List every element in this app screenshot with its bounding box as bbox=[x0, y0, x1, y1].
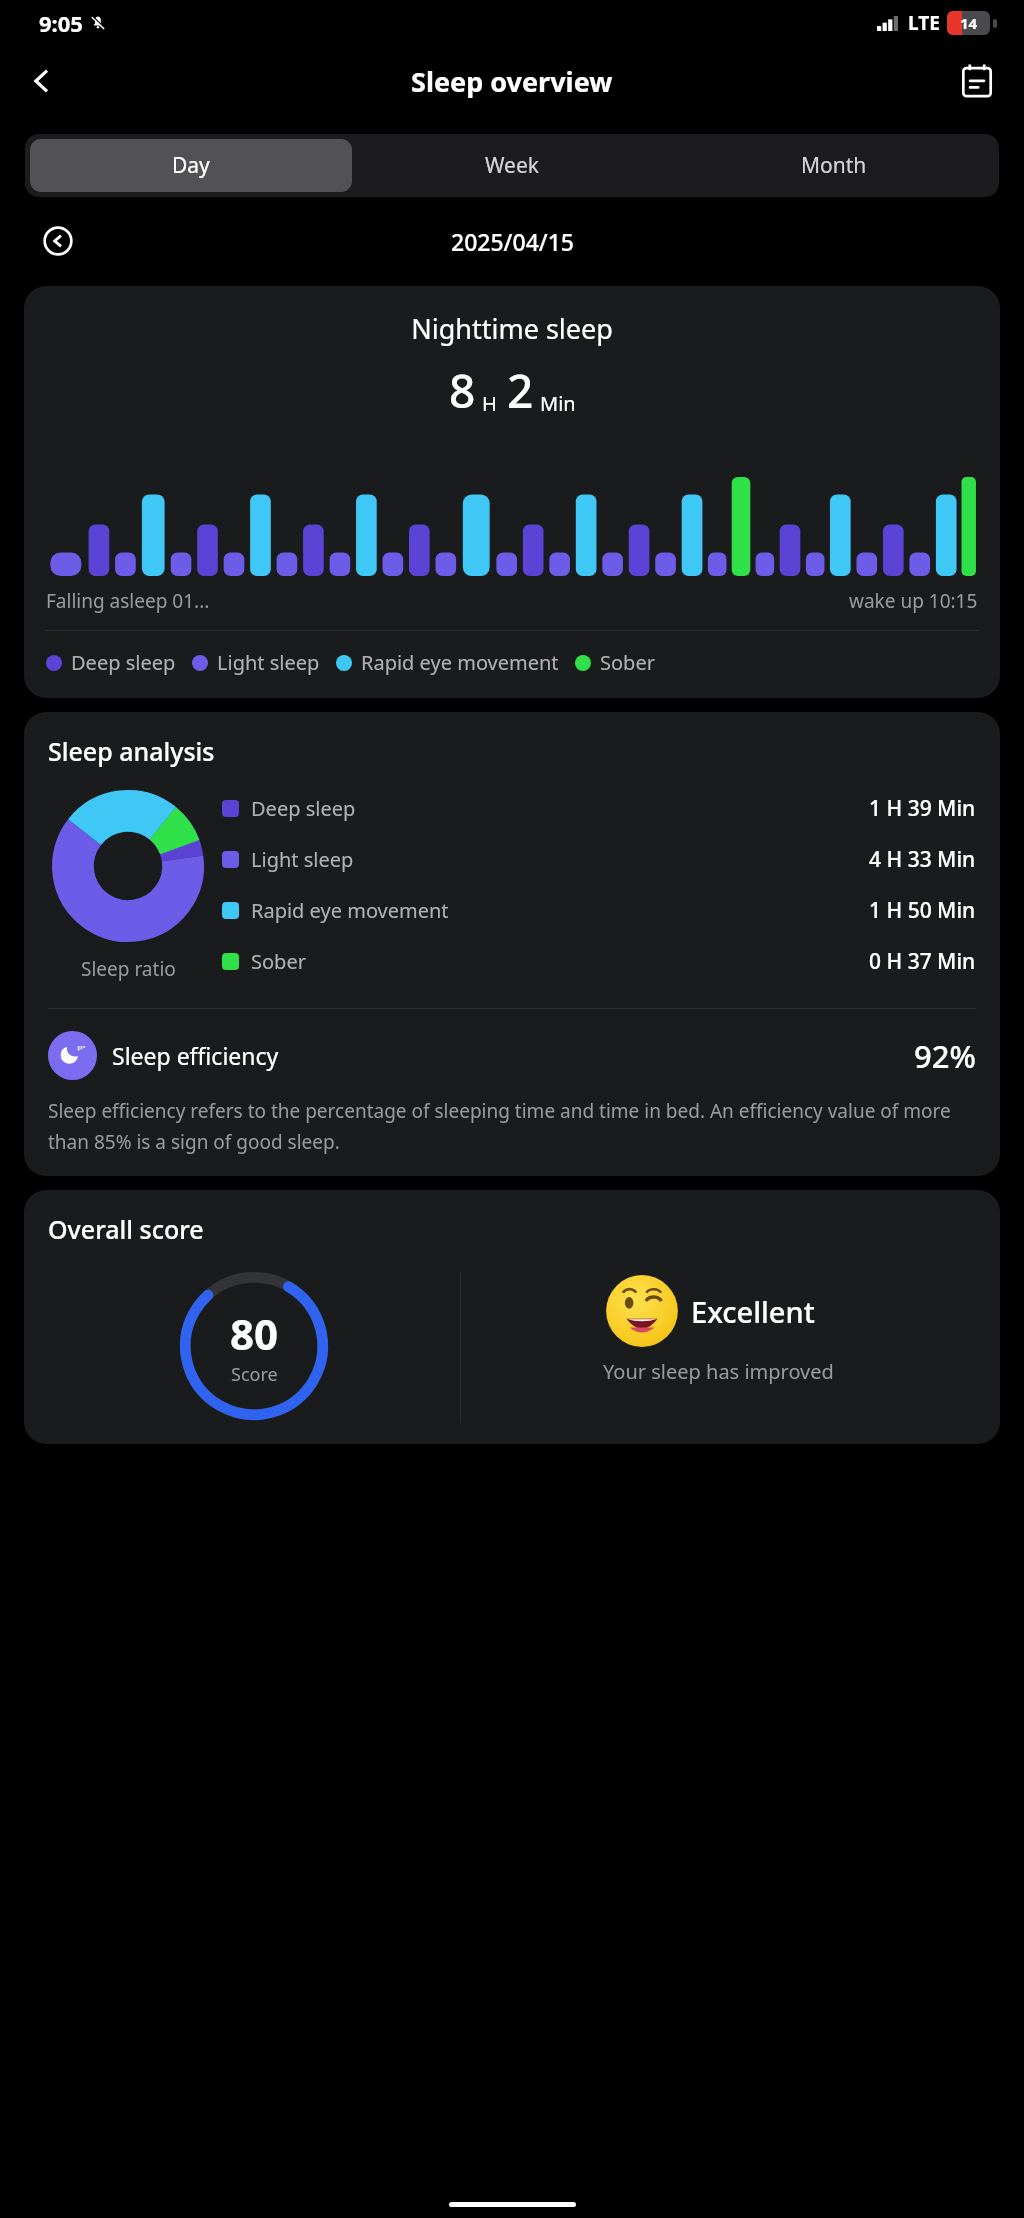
staticText: 4 H 33 Min bbox=[869, 845, 976, 874]
button[interactable]: Month bbox=[673, 139, 994, 192]
staticText: Light sleep bbox=[251, 846, 354, 873]
staticText: Your sleep has improved bbox=[603, 1358, 834, 1385]
staticText: Rapid eye movement bbox=[251, 897, 449, 924]
staticText: Week bbox=[485, 151, 540, 180]
staticText: Light sleep bbox=[217, 649, 320, 676]
button[interactable]: Back bbox=[14, 53, 70, 109]
staticText: Sober bbox=[600, 649, 655, 676]
button[interactable]: Week bbox=[352, 139, 673, 192]
staticText: Sleep overview bbox=[411, 63, 613, 100]
staticText: Deep sleep bbox=[251, 795, 356, 822]
staticText: 0 H 37 Min bbox=[869, 947, 976, 976]
staticText: Score bbox=[231, 1362, 278, 1387]
staticText: Sleep efficiency refers to the percentag… bbox=[48, 1098, 976, 1154]
staticText: 9:05 bbox=[39, 8, 83, 38]
staticText: Sleep efficiency bbox=[112, 1040, 279, 1071]
staticText: 92% bbox=[914, 1035, 976, 1077]
staticText: Deep sleep bbox=[71, 649, 176, 676]
staticText: Nighttime sleep bbox=[46, 310, 978, 347]
staticText: 1 H 39 Min bbox=[869, 794, 976, 823]
button[interactable]: Sleep diary bbox=[948, 52, 1006, 110]
button[interactable]: Sleep efficiency bbox=[48, 1031, 976, 1080]
staticText: Falling asleep 01... bbox=[46, 588, 210, 614]
staticText: 2 bbox=[507, 359, 534, 422]
staticText: Month bbox=[801, 151, 867, 180]
staticText: Min bbox=[540, 390, 576, 417]
staticText: 8 bbox=[449, 359, 476, 422]
staticText: wake up 10:15 bbox=[849, 588, 978, 614]
staticText: 1 H 50 Min bbox=[869, 896, 976, 925]
button[interactable]: Previous day bbox=[34, 217, 82, 265]
staticText: Excellent bbox=[691, 1292, 815, 1331]
staticText: Overall score bbox=[48, 1212, 204, 1246]
staticText: 14 bbox=[960, 13, 978, 33]
staticText: 2025/04/15 bbox=[451, 226, 574, 257]
staticText: LTE bbox=[908, 10, 940, 36]
staticText: H bbox=[482, 390, 497, 417]
staticText: 80 bbox=[230, 1305, 279, 1362]
button[interactable]: Day bbox=[30, 139, 352, 192]
staticText: Sleep analysis bbox=[48, 734, 215, 768]
staticText: Rapid eye movement bbox=[361, 649, 559, 676]
staticText: Day bbox=[172, 151, 210, 180]
staticText: Sober bbox=[251, 948, 306, 975]
staticText: Sleep ratio bbox=[81, 956, 176, 982]
